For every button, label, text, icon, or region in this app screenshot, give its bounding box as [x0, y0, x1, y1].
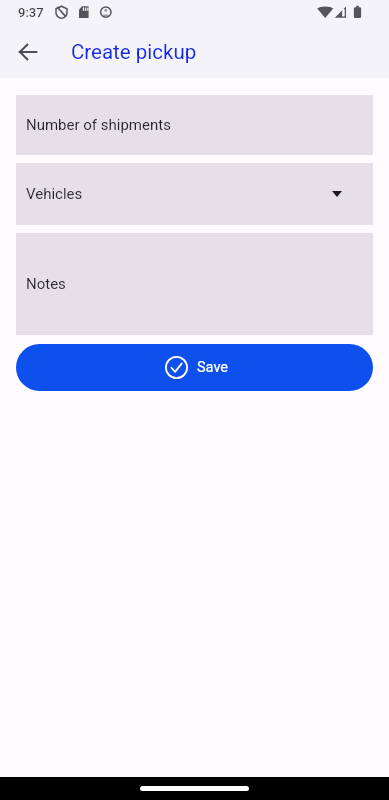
- button[interactable]: Back: [8, 32, 48, 72]
- button[interactable]: Save: [16, 344, 373, 391]
- button[interactable]: Number of shipments: [16, 95, 373, 155]
- staticText: Create pickup: [71, 40, 197, 64]
- staticText: Number of shipments: [26, 116, 171, 134]
- staticText: Vehicles: [26, 185, 83, 203]
- button[interactable]: Vehicles: [16, 163, 373, 225]
- staticText: Notes: [26, 275, 66, 293]
- staticText: 9:37: [18, 5, 44, 20]
- staticText: Save: [197, 359, 229, 376]
- button[interactable]: Notes: [16, 233, 373, 335]
